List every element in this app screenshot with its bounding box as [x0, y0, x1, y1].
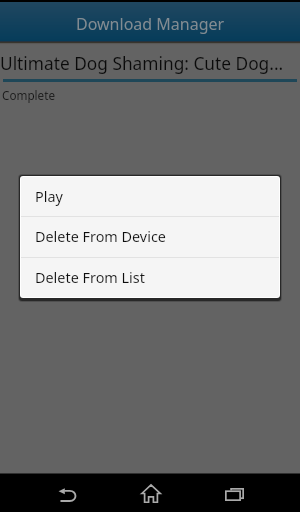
staticText: Delete From List [35, 268, 145, 288]
staticText: Delete From Device [35, 227, 166, 247]
button[interactable]: Back [51, 478, 83, 510]
button[interactable]: Delete From Device [21, 217, 279, 257]
staticText: Complete [2, 87, 55, 103]
button[interactable]: Recent apps [218, 478, 250, 510]
button[interactable]: Delete From List [21, 258, 279, 297]
button[interactable]: Home [135, 477, 167, 509]
staticText: Play [35, 187, 63, 207]
button[interactable]: Play [21, 177, 279, 216]
staticText: Download Manager [76, 13, 225, 35]
staticText: Ultimate Dog Shaming: Cute Dog... [0, 52, 284, 76]
